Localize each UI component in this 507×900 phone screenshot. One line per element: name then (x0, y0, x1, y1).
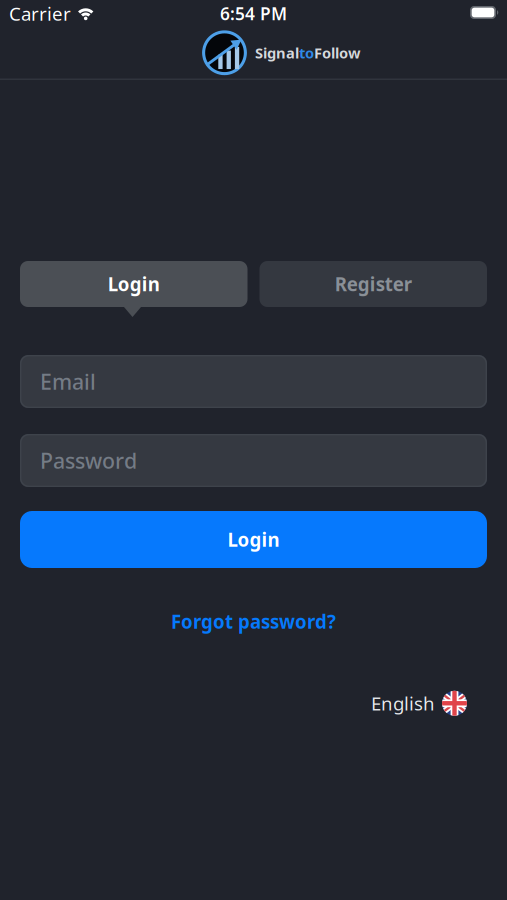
staticText: Follow (314, 43, 361, 62)
button[interactable]: Forgot password? (171, 609, 336, 634)
staticText: Email (40, 367, 96, 396)
staticText: Login (108, 272, 160, 296)
staticText: English (371, 691, 435, 716)
staticText: Login (227, 527, 279, 552)
staticText: Forgot password? (171, 609, 336, 634)
staticText: Register (335, 272, 412, 296)
staticText: Password (40, 446, 137, 475)
button[interactable]: Language: English (371, 691, 467, 716)
staticText: 6:54 PM (220, 2, 287, 25)
button[interactable]: Login (20, 261, 247, 307)
button[interactable]: Password (20, 434, 487, 487)
staticText: to (299, 43, 314, 62)
button[interactable]: Register (259, 261, 487, 307)
staticText: Carrier (9, 1, 71, 26)
button[interactable]: Email (20, 355, 487, 408)
button[interactable]: Login (20, 511, 487, 568)
staticText: Signal (255, 43, 299, 62)
